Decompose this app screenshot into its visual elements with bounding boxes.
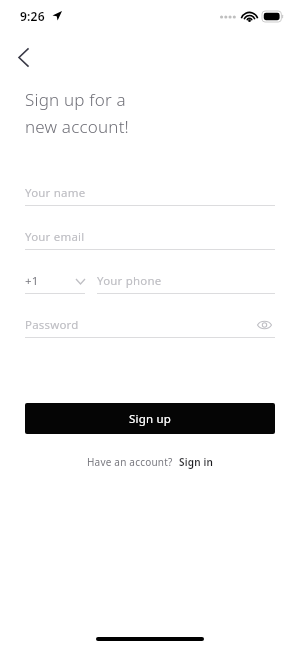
staticText: 9:26 <box>20 8 45 24</box>
staticText: Your name <box>25 185 86 201</box>
staticText: Sign in <box>179 455 214 469</box>
staticText: Password <box>25 317 79 333</box>
staticText: Your phone <box>97 273 162 289</box>
staticText: new account! <box>25 115 129 138</box>
staticText: +1 <box>25 273 39 289</box>
button[interactable]: Your email <box>25 226 275 250</box>
staticText: Sign up <box>129 411 172 427</box>
button[interactable]: Sign up <box>25 403 275 434</box>
button[interactable]: Show password <box>253 314 275 336</box>
button[interactable]: +1 <box>25 270 85 294</box>
button[interactable]: Back <box>6 40 40 74</box>
staticText: Your email <box>25 229 85 245</box>
staticText: Sign up for a <box>25 88 126 111</box>
staticText: Have an account? <box>87 455 173 469</box>
button[interactable]: Your name <box>25 182 275 206</box>
button[interactable]: Sign in <box>179 455 214 469</box>
button[interactable]: Password <box>25 314 275 336</box>
button[interactable]: Your phone <box>97 270 275 294</box>
